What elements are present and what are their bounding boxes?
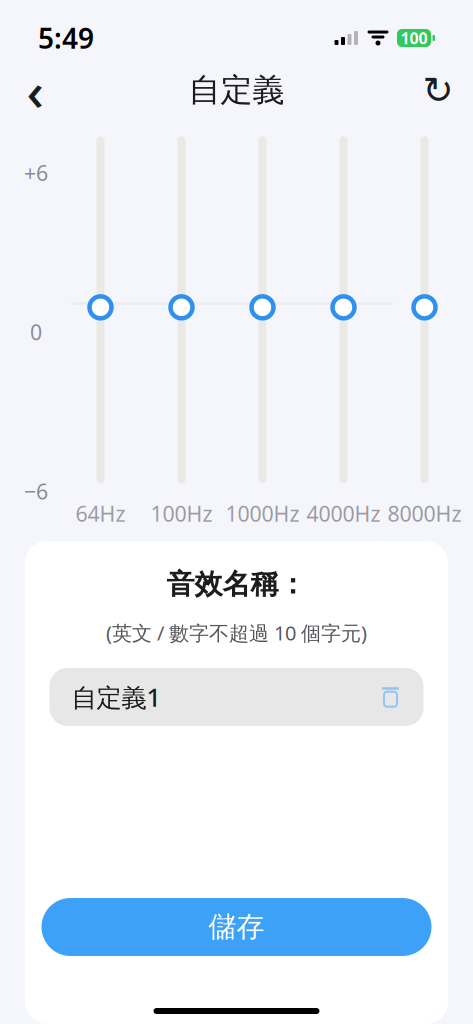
staticText: ‹ [26,55,43,125]
staticText: 儲存 [208,910,264,944]
staticText: 自定義 [188,70,284,110]
button[interactable]: 自定義1 [49,668,423,726]
staticText: 64Hz [75,499,125,528]
button[interactable]: 儲存 [41,898,431,956]
staticText: 8000Hz [387,499,461,528]
staticText: 音效名稱： [166,567,306,601]
staticText: 100Hz [150,499,212,528]
staticText: 自定義1 [71,680,160,714]
staticText: (英文 / 數字不超過 10 個字元) [106,619,367,646]
staticText: 1000Hz [225,499,299,528]
staticText: ↻ [422,69,453,111]
staticText: 4000Hz [306,499,380,528]
staticText: 5:49 [38,19,94,57]
staticText: +6 [24,158,48,187]
staticText: −6 [24,477,48,505]
staticText: 100 [400,27,427,49]
button[interactable]: 返回 [12,67,58,113]
button[interactable]: 重設 [415,67,461,113]
staticText: 0 [30,318,42,346]
